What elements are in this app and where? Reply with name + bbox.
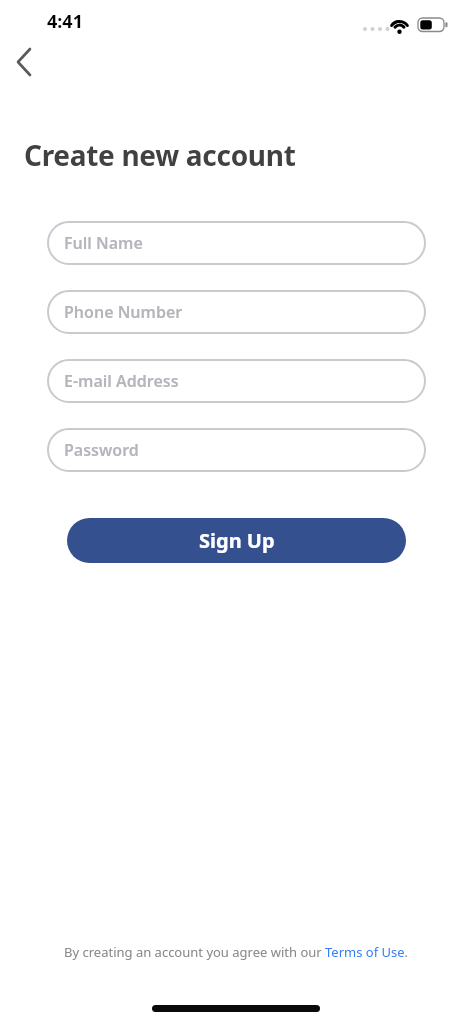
button[interactable] [8,42,44,78]
staticText: Sign Up [199,527,275,554]
button[interactable]: Sign Up [67,518,406,563]
staticText: Create new account [24,136,296,174]
button[interactable]: By creating an account you agree with ou… [0,942,473,962]
staticText: E-mail Address [64,370,179,392]
staticText: Password [64,439,139,461]
staticText: Phone Number [64,301,183,323]
staticText: 4:41 [47,9,83,34]
button[interactable]: Password [47,428,426,472]
staticText: By creating an account you agree with ou… [64,943,409,961]
staticText: Full Name [64,232,143,254]
button[interactable]: Full Name [47,221,426,265]
button[interactable]: E-mail Address [47,359,426,403]
button[interactable]: Phone Number [47,290,426,334]
